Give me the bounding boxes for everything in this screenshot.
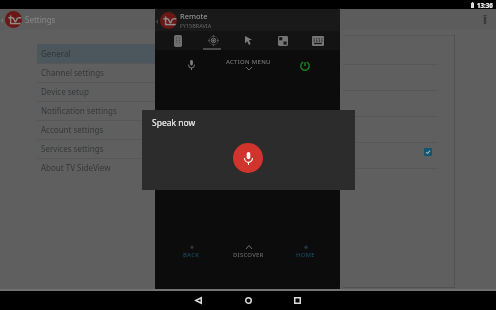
button[interactable]: General <box>37 44 155 63</box>
button[interactable]: Recent apps <box>285 291 309 310</box>
button[interactable]: Keyboard <box>303 31 333 50</box>
staticText: 13:36 <box>477 1 493 9</box>
staticText: Device setup <box>41 86 89 97</box>
button[interactable]: Notification settings <box>37 101 155 120</box>
staticText: ‹ <box>156 15 159 26</box>
staticText: Remote <box>180 11 208 21</box>
button[interactable]: Gesture pad <box>268 31 298 50</box>
button[interactable]: Services settings <box>37 139 155 158</box>
button[interactable]: ACTION MENU <box>223 58 273 74</box>
staticText: DISCOVER <box>233 251 264 259</box>
button[interactable]: BACK <box>169 245 213 265</box>
staticText: Account settings <box>41 124 104 135</box>
staticText: ACTION MENU <box>226 58 271 66</box>
staticText: Notification settings <box>41 105 117 116</box>
button[interactable]: Cursor <box>233 31 263 50</box>
button[interactable]: HOME <box>283 245 327 265</box>
button[interactable]: Home <box>236 291 260 310</box>
staticText: BACK <box>183 251 200 259</box>
button[interactable]: D-pad <box>198 31 228 50</box>
staticText: Settings <box>25 14 56 25</box>
staticText: FY15BRAVIA <box>180 22 212 29</box>
button[interactable]: Device setup <box>37 82 155 101</box>
button[interactable]: More options <box>478 9 492 30</box>
staticText: HOME <box>296 251 315 259</box>
button[interactable]: Back <box>186 291 210 310</box>
staticText: About TV SideView <box>41 162 111 173</box>
staticText: Speak now <box>152 117 196 129</box>
staticText: ‹ <box>1 14 4 25</box>
staticText: Services settings <box>41 143 104 154</box>
button[interactable]: Voice search <box>186 59 197 70</box>
button[interactable]: Checkbox <box>424 148 432 156</box>
button[interactable]: Channel settings <box>37 63 155 82</box>
button[interactable]: About TV SideView <box>37 158 155 177</box>
staticText: General <box>41 48 71 59</box>
button[interactable]: Power <box>299 60 310 71</box>
button[interactable]: Remote keypad <box>163 31 193 50</box>
staticText: Channel settings <box>41 67 104 78</box>
button[interactable]: Microphone, speak now <box>233 143 263 173</box>
button[interactable]: DISCOVER <box>226 245 270 265</box>
button[interactable]: Account settings <box>37 120 155 139</box>
